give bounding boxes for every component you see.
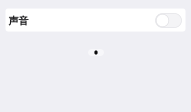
staticText: 声音 (8, 15, 28, 27)
button[interactable]: 声音 (5, 8, 185, 31)
